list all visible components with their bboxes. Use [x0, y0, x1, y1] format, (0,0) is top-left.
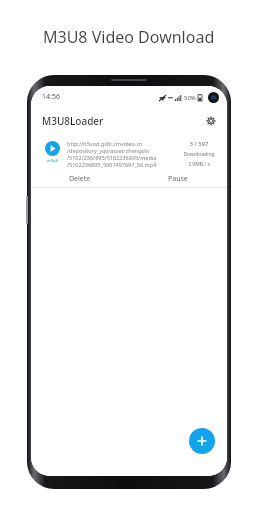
button[interactable]: Delete — [31, 170, 129, 187]
staticText: Delete — [69, 174, 91, 184]
staticText: /5102/236/895/5102236895/media — [67, 154, 157, 161]
staticText: Downloading — [183, 151, 215, 158]
staticText: /depository_yqv/asset/zhengshi — [67, 147, 149, 154]
staticText: Pause — [168, 174, 188, 184]
button[interactable]: m3u8 — [31, 134, 227, 170]
staticText: m3u8 — [47, 158, 58, 163]
staticText: 3.9MB / s — [188, 161, 210, 168]
button[interactable]: Settings — [202, 112, 220, 130]
staticText: M3U8 Video Download — [43, 26, 215, 48]
staticText: 3 / 597 — [189, 140, 209, 148]
staticText: 14:56 — [42, 92, 60, 102]
staticText: M3U8Loader — [42, 114, 104, 128]
button[interactable]: Pause — [129, 170, 227, 187]
staticText: http://h5vod.gslb.cmvideo.cn — [67, 140, 143, 147]
button[interactable]: Add new download — [189, 428, 215, 454]
staticText: /5102236895_5007497697_56.mp4 — [67, 161, 157, 168]
staticText: 50% — [184, 94, 196, 102]
